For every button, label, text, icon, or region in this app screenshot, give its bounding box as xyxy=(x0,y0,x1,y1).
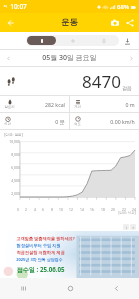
button[interactable]: 시간 xyxy=(0,113,69,129)
staticText: × xyxy=(132,225,135,230)
staticText: 칼로리 xyxy=(4,105,15,109)
staticText: 18 xyxy=(101,207,105,211)
staticText: 14 xyxy=(80,207,84,211)
button[interactable]: 칼로리 xyxy=(0,96,69,112)
button[interactable]: Next day xyxy=(123,50,139,66)
button[interactable]: Close ad xyxy=(130,224,136,230)
staticText: 24 xyxy=(132,207,136,211)
staticText: 접수일 : 25.06.05 xyxy=(16,265,65,273)
staticText: 0.00 km/h xyxy=(110,118,135,125)
button[interactable]: Water tab xyxy=(89,36,118,45)
button[interactable]: 거리 xyxy=(70,96,139,112)
staticText: 걸음 xyxy=(122,85,132,91)
staticText: 05월 30일 금요일 xyxy=(42,53,97,63)
staticText: 4,000 xyxy=(11,178,20,183)
button[interactable]: Home xyxy=(47,278,93,299)
staticText: 거리 xyxy=(74,105,81,109)
staticText: 8470 xyxy=(82,70,121,93)
staticText: 6 xyxy=(42,207,44,211)
staticText: 16 xyxy=(90,207,94,211)
staticText: 4 xyxy=(34,207,36,211)
staticText: 속도 xyxy=(74,122,81,126)
button[interactable]: Share xyxy=(122,15,137,30)
staticText: 22 xyxy=(122,207,126,211)
staticText: 현장설비부터 수입 지원 xyxy=(16,243,61,249)
staticText: 12 xyxy=(69,207,73,211)
button[interactable]: 속도 xyxy=(70,113,139,129)
staticText: 282 kcal xyxy=(45,101,65,108)
button[interactable]: Heart rate tab xyxy=(58,36,87,45)
staticText: 8 xyxy=(51,207,53,211)
staticText: 6,000 xyxy=(11,165,20,170)
staticText: [단위: 걸음] xyxy=(4,132,23,137)
staticText: 운동 xyxy=(61,17,78,28)
staticText: [단위: 시간] xyxy=(118,210,136,215)
staticText: 고객맞춤 맞춤제작을 원하세요? xyxy=(16,236,75,242)
staticText: i xyxy=(126,225,127,230)
staticText: 2025년 3차 단독 상담접수 xyxy=(16,257,63,262)
staticText: 0 분 xyxy=(55,118,65,125)
staticText: 20 xyxy=(111,207,115,211)
button[interactable]: Steps tab xyxy=(27,36,56,45)
button[interactable]: Back xyxy=(93,278,139,299)
staticText: 2 xyxy=(25,207,27,211)
staticText: 시간 xyxy=(4,122,11,126)
staticText: 10,000 xyxy=(9,139,20,144)
staticText: 0 m xyxy=(125,101,135,108)
button[interactable]: Ad info xyxy=(123,224,129,230)
staticText: 0 xyxy=(17,207,19,211)
staticText: 8,000 xyxy=(11,152,20,157)
button[interactable]: Camera xyxy=(107,15,122,30)
staticText: 68% xyxy=(117,3,129,11)
staticText: 착공컨설팅 저렴하게 제공 xyxy=(16,250,65,256)
button[interactable]: Download xyxy=(119,33,135,49)
button[interactable]: Back xyxy=(2,15,18,31)
staticText: 2,000 xyxy=(11,191,20,196)
button[interactable]: Recents xyxy=(0,278,47,299)
staticText: 10:07 xyxy=(10,2,27,11)
button[interactable]: Advertisement xyxy=(0,231,139,278)
button[interactable]: Previous day xyxy=(0,50,16,66)
staticText: 10 xyxy=(59,207,63,211)
